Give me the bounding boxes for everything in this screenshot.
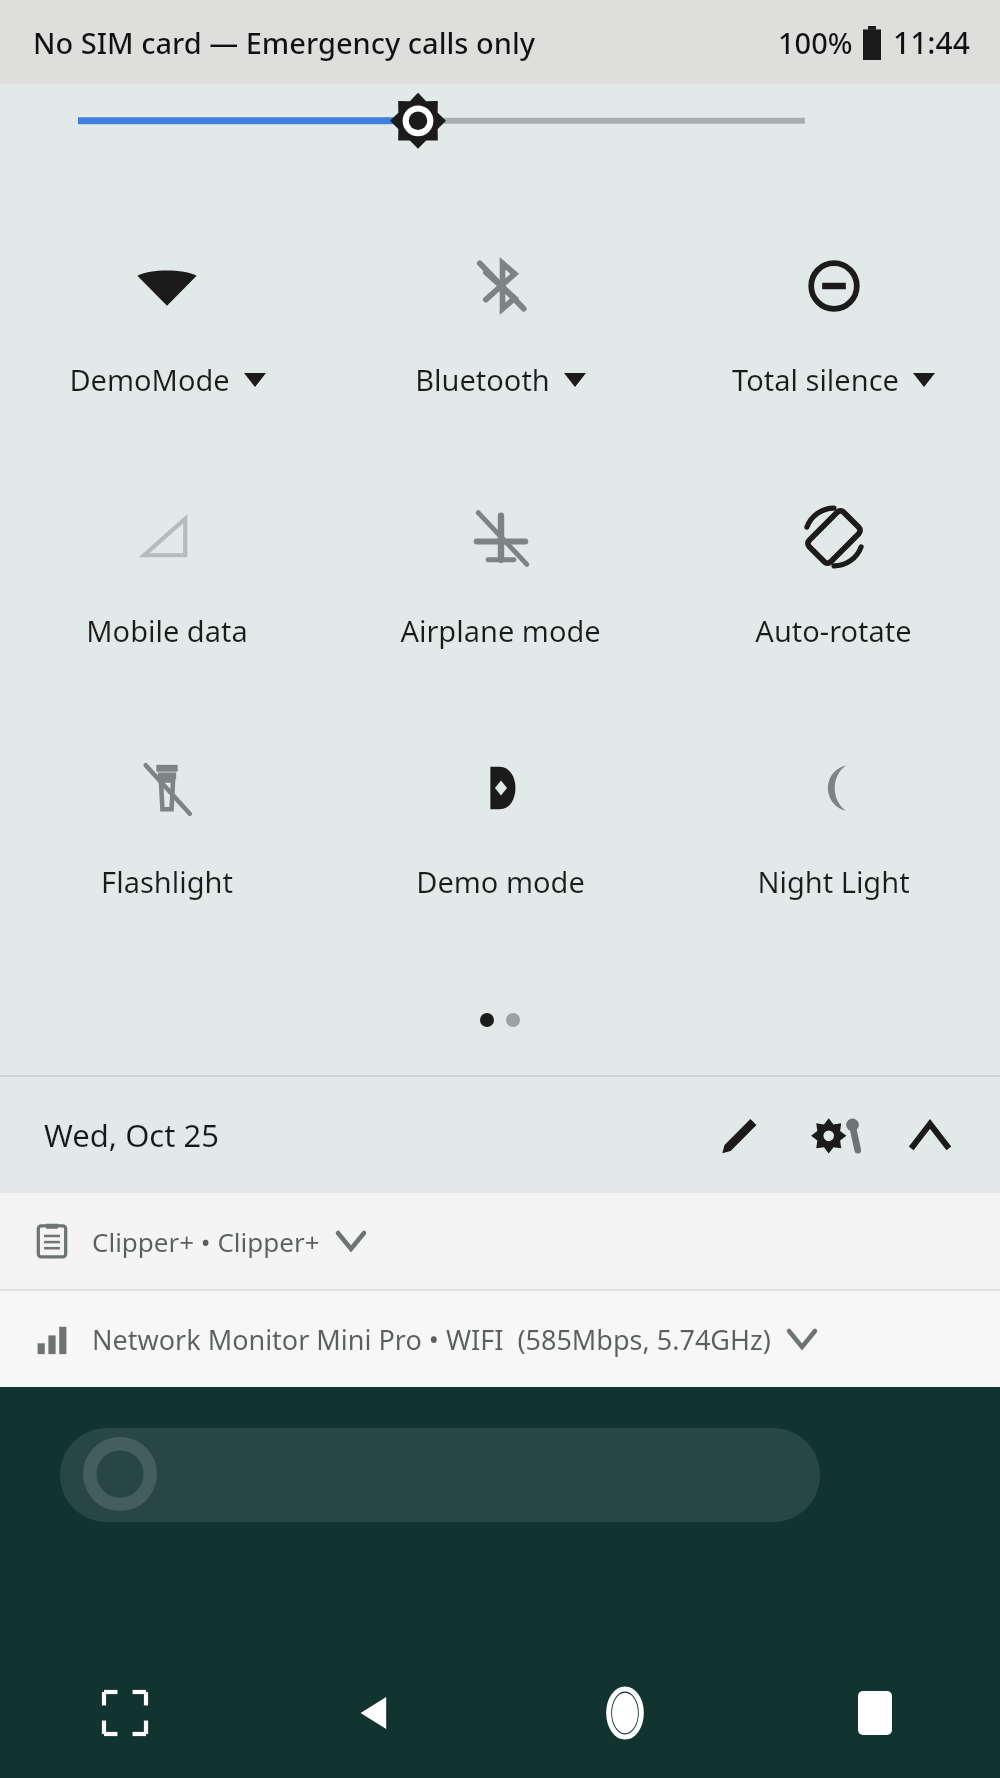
button[interactable]: Mobile data [0,499,334,650]
staticText: Airplane mode [400,611,601,650]
staticText: Night Light [757,862,910,901]
staticText: DemoMode [69,360,230,399]
button[interactable]: Bluetooth [334,248,667,399]
button[interactable]: Settings [798,1095,878,1175]
staticText: Wed, Oct 25 [44,1114,219,1156]
staticText: Total silence [732,360,899,399]
staticText: Clipper+ • Clipper+ [92,1224,320,1259]
staticText: No SIM card — Emergency calls only [33,23,536,62]
button[interactable] [60,1428,820,1522]
button[interactable]: Flashlight [0,750,334,901]
button[interactable]: Clipper+ • Clipper+ [0,1193,1000,1289]
button[interactable]: Edit [702,1098,776,1172]
staticText: Demo mode [416,862,585,901]
staticText: Network Monitor Mini Pro • WIFI (585Mbps… [92,1321,771,1358]
button[interactable]: Demo mode [334,750,667,901]
staticText: Bluetooth [415,360,550,399]
button[interactable]: Auto-rotate [667,499,1000,650]
button[interactable]: Back [250,1648,500,1778]
button[interactable]: Airplane mode [334,499,667,650]
button[interactable]: Home [500,1648,750,1778]
staticText: 11:44 [893,22,970,63]
staticText: Mobile data [86,611,248,650]
staticText: Flashlight [101,862,233,901]
button[interactable]: Total silence [667,248,1000,399]
button[interactable]: Brightness [0,84,1000,176]
button[interactable]: DemoMode [0,248,334,399]
button[interactable]: Collapse [894,1099,966,1171]
button[interactable]: Night Light [667,750,1000,901]
button[interactable]: Network Monitor Mini Pro • WIFI (585Mbps… [0,1291,1000,1387]
staticText: Auto-rotate [755,611,912,650]
button[interactable]: Recents [750,1648,1000,1778]
staticText: 100% [778,23,853,62]
button[interactable]: Screenshot [0,1648,250,1778]
